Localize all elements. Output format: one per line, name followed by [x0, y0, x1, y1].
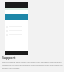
staticText: Find trusted help near you with our veri…: [2, 61, 63, 70]
button[interactable]: [5, 29, 28, 32]
staticText: Support: [2, 55, 16, 60]
button[interactable]: [5, 25, 28, 28]
button[interactable]: [5, 33, 28, 36]
